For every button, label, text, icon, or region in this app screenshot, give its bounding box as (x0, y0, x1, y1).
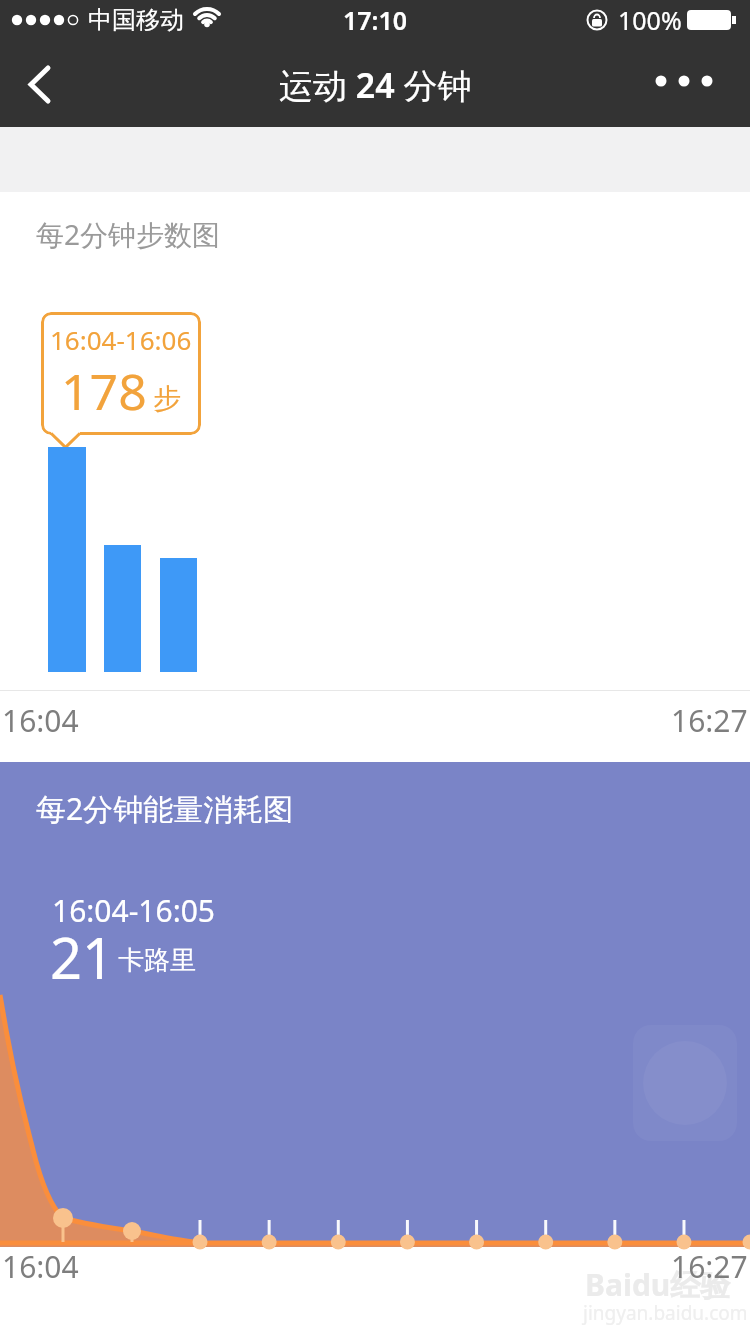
staticText: 卡路里 (118, 944, 196, 977)
staticText: 每2分钟能量消耗图 (36, 788, 294, 824)
button[interactable] (16, 56, 72, 112)
button[interactable] (640, 56, 730, 112)
staticText: 运动 24 分钟 (279, 62, 472, 106)
staticText: jingyan.baidu.com (583, 1300, 748, 1326)
staticText: 100% (618, 3, 682, 37)
staticText: 21 (50, 919, 115, 983)
staticText: 16:27 (671, 700, 748, 734)
staticText: Baidu经验 (585, 1264, 731, 1304)
staticText: 每2分钟步数图 (36, 215, 221, 251)
staticText: 16:04 (2, 700, 79, 734)
staticText: 17:10 (343, 3, 408, 37)
button[interactable]: 16:04-16:06 (41, 312, 201, 435)
staticText: 步 (153, 381, 181, 416)
staticText: 178 (61, 357, 147, 425)
staticText: 16:27 (671, 1246, 748, 1280)
staticText: 16:04 (2, 1246, 79, 1280)
staticText: 16:04-16:06 (50, 322, 192, 357)
staticText: 中国移动 (88, 5, 184, 35)
staticText: 16:04-16:05 (52, 890, 216, 926)
